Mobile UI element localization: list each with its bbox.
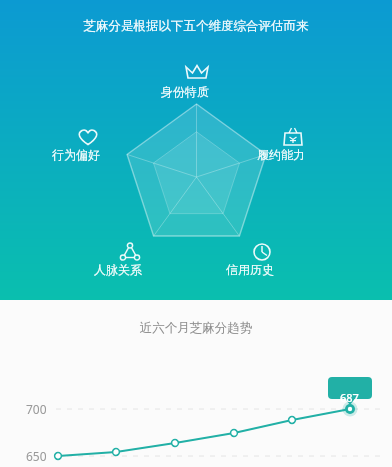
other: 行为偏好 [0, 0, 392, 300]
staticText: 650 [26, 448, 47, 464]
staticText: 芝麻分是根据以下五个维度综合评估而来 [0, 18, 392, 34]
other: 身份特质 [0, 0, 392, 300]
staticText: 700 [26, 401, 47, 417]
button[interactable]: 履约能力 [257, 147, 305, 162]
button[interactable]: 身份特质 [161, 84, 209, 99]
other: 人脉关系 [0, 0, 392, 300]
button[interactable]: 近六个月芝麻分趋势 [0, 300, 392, 467]
staticText: 687 [340, 390, 359, 405]
button[interactable]: 行为偏好 [52, 147, 100, 162]
other: 履约能力 [0, 0, 392, 300]
staticText: 近六个月芝麻分趋势 [0, 320, 392, 336]
other: 信用历史 [0, 0, 392, 300]
button[interactable]: 人脉关系 [94, 262, 142, 277]
button[interactable]: 信用历史 [226, 262, 274, 277]
